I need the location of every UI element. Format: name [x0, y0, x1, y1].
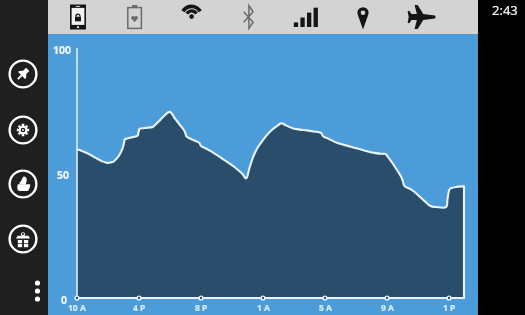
button[interactable]: More options: [26, 276, 49, 306]
staticText: 1 A: [257, 302, 270, 314]
staticText: 5 A: [319, 302, 332, 314]
button[interactable]: Like: [8, 169, 38, 199]
staticText: 2:43: [492, 1, 518, 19]
button[interactable]: Gift: [8, 224, 38, 254]
staticText: 9 A: [381, 302, 394, 314]
staticText: 100: [53, 43, 72, 57]
staticText: 10 A: [68, 302, 86, 314]
button[interactable]: Pin: [8, 59, 38, 89]
staticText: 50: [57, 168, 70, 182]
button[interactable]: Settings: [8, 115, 38, 145]
staticText: 1 P: [443, 302, 456, 314]
staticText: 4 P: [133, 302, 146, 314]
staticText: 0: [61, 293, 68, 307]
staticText: 8 P: [195, 302, 208, 314]
